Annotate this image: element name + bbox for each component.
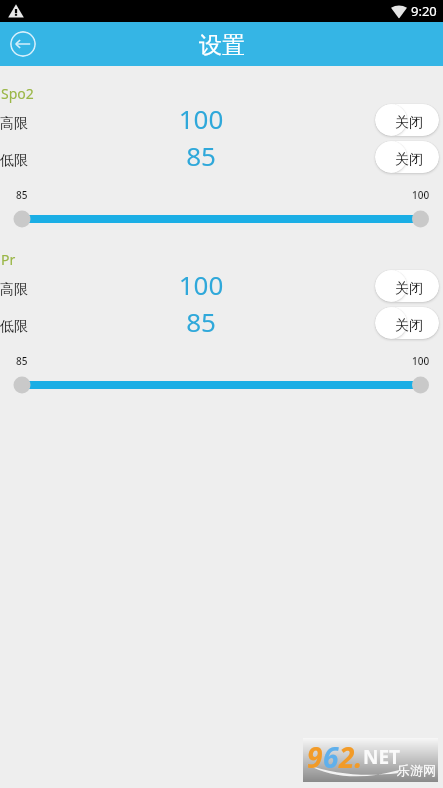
staticText: 100: [161, 101, 241, 133]
staticText: Pr: [1, 250, 16, 269]
staticText: 85: [16, 354, 28, 368]
staticText: 100: [161, 267, 241, 299]
staticText: 85: [16, 188, 28, 202]
staticText: Spo2: [1, 84, 34, 103]
staticText: 乐游网: [397, 762, 436, 778]
button[interactable]: 关闭: [375, 270, 439, 302]
staticText: 85: [161, 138, 241, 170]
button[interactable]: Adjust range 85 to 100: [0, 374, 443, 396]
staticText: 关闭: [395, 280, 423, 298]
button[interactable]: Back: [10, 31, 36, 57]
staticText: 9:20: [411, 2, 437, 20]
staticText: 高限: [0, 281, 28, 299]
button[interactable]: 关闭: [375, 104, 439, 136]
staticText: NET: [363, 744, 401, 770]
staticText: 设置: [199, 31, 245, 60]
button[interactable]: 高限: [0, 274, 330, 306]
staticText: 2.: [339, 738, 363, 776]
staticText: 低限: [0, 318, 28, 336]
button[interactable]: Adjust range 85 to 100: [0, 208, 443, 230]
button[interactable]: 高限: [0, 108, 330, 140]
button[interactable]: 低限: [0, 311, 330, 343]
staticText: 9: [307, 738, 323, 776]
staticText: 关闭: [395, 114, 423, 132]
button[interactable]: 关闭: [375, 141, 439, 173]
button[interactable]: 关闭: [375, 307, 439, 339]
button[interactable]: 低限: [0, 145, 330, 177]
staticText: 高限: [0, 115, 28, 133]
staticText: 关闭: [395, 317, 423, 335]
staticText: 6: [323, 738, 339, 776]
staticText: 85: [161, 304, 241, 336]
staticText: 100: [412, 188, 430, 202]
staticText: 关闭: [395, 151, 423, 169]
staticText: 100: [412, 354, 430, 368]
staticText: 低限: [0, 152, 28, 170]
